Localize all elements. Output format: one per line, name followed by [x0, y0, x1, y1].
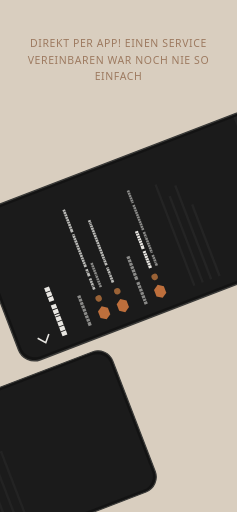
button[interactable]: App Vorschau — [0, 0, 237, 512]
staticText: DIREKT PER APP! EINEN SERVICE VEREINBARE… — [14, 36, 223, 83]
